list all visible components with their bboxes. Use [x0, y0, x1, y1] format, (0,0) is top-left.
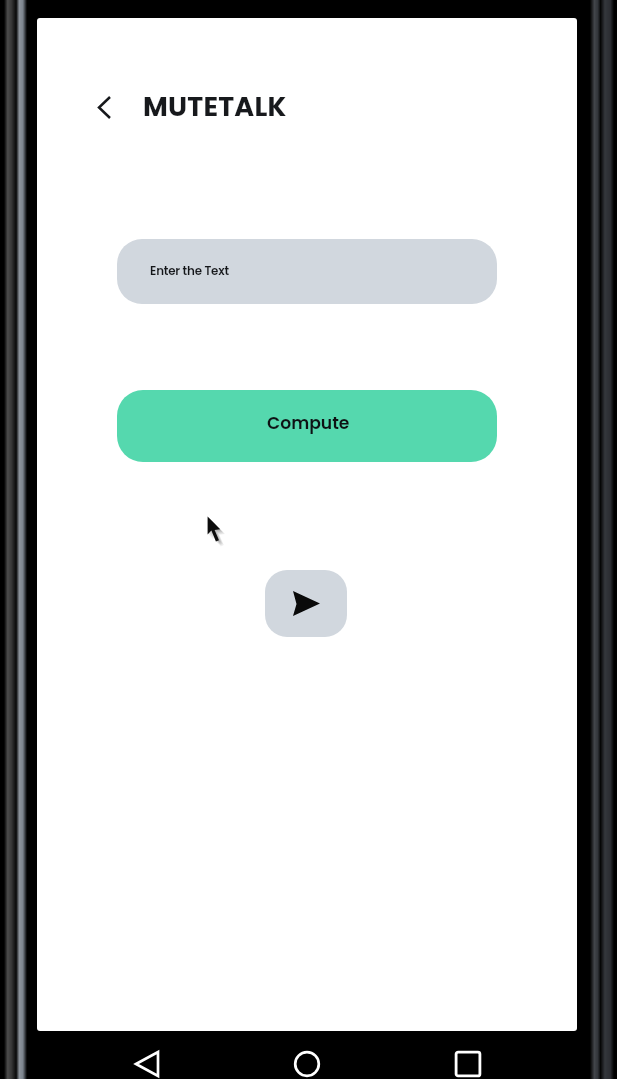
- button[interactable]: Compute: [117, 390, 497, 462]
- button[interactable]: Back: [122, 1039, 171, 1079]
- staticText: Compute: [267, 411, 350, 435]
- button[interactable]: Enter the Text: [117, 239, 497, 304]
- button[interactable]: Home: [282, 1039, 331, 1079]
- button[interactable]: Back: [86, 89, 122, 125]
- button[interactable]: Recent apps: [443, 1039, 492, 1079]
- button[interactable]: Play: [265, 570, 347, 637]
- staticText: Enter the Text: [150, 263, 229, 280]
- staticText: MUTETALK: [143, 88, 287, 126]
